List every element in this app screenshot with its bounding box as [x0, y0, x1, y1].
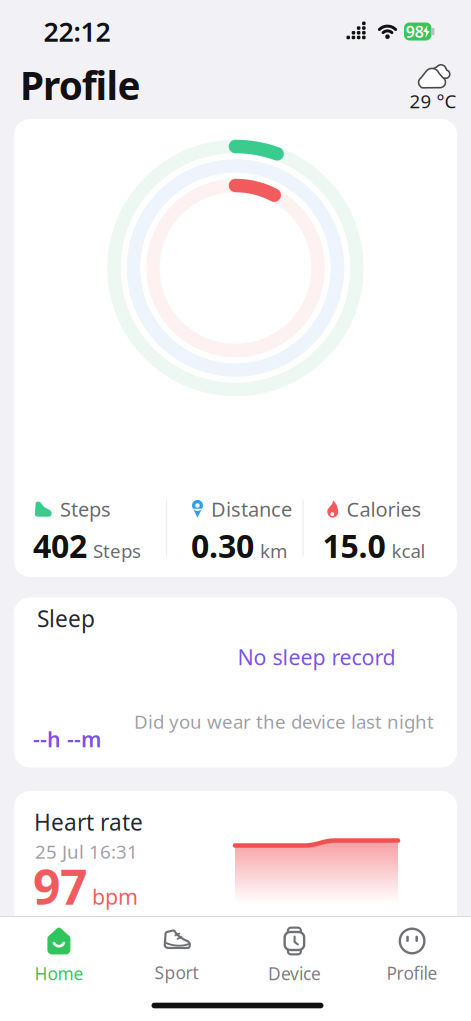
button[interactable]: Profile: [362, 927, 462, 985]
staticText: Sleep: [37, 603, 95, 633]
staticText: Calories: [346, 496, 421, 522]
staticText: Profile: [387, 961, 438, 984]
staticText: Steps: [60, 496, 111, 522]
button[interactable]: Device: [244, 927, 344, 985]
staticText: kcal: [391, 538, 425, 563]
button[interactable]: Heart rate: [14, 791, 457, 916]
button[interactable]: Sport: [127, 927, 227, 985]
staticText: Steps: [93, 538, 141, 563]
staticText: 25 Jul 16:31: [35, 839, 138, 864]
staticText: Heart rate: [34, 807, 143, 837]
staticText: Distance: [211, 496, 292, 522]
staticText: --h --m: [33, 725, 101, 753]
staticText: Sport: [155, 961, 199, 984]
staticText: Device: [268, 962, 321, 985]
button[interactable]: Home: [9, 927, 109, 985]
staticText: 22:12: [43, 14, 110, 49]
staticText: 402: [33, 524, 87, 567]
button[interactable]: Steps: [14, 119, 457, 577]
staticText: Did you wear the device last night: [134, 709, 434, 734]
staticText: bpm: [92, 882, 138, 911]
staticText: km: [260, 538, 287, 563]
staticText: 15.0: [322, 524, 385, 567]
staticText: 97: [33, 854, 87, 918]
staticText: 29 °C: [409, 89, 456, 113]
staticText: 98: [406, 21, 424, 42]
button[interactable]: Sleep: [14, 597, 457, 767]
staticText: No sleep record: [237, 643, 395, 671]
staticText: 0.30: [191, 524, 254, 567]
staticText: Profile: [20, 59, 140, 111]
staticText: Home: [34, 962, 83, 985]
